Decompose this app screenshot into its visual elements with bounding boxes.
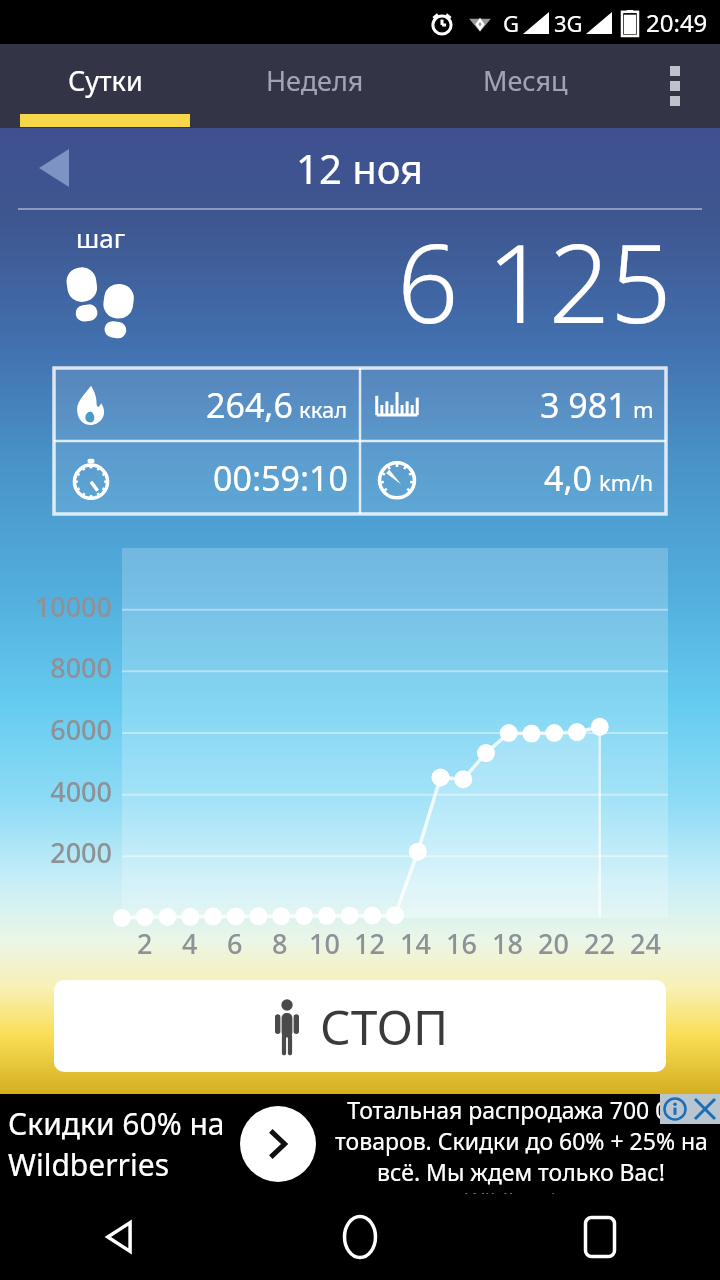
staticText: 264,6 xyxy=(206,382,293,428)
staticText: 4,0 xyxy=(544,455,593,501)
button[interactable]: Previous day xyxy=(26,140,82,196)
staticText: 4000 xyxy=(50,773,112,810)
staticText: СТОП xyxy=(320,994,449,1059)
staticText: 00:59:10 xyxy=(213,455,348,501)
staticText: Неделя xyxy=(266,62,364,99)
staticText: 2000 xyxy=(50,834,112,871)
staticText: 6000 xyxy=(50,711,112,748)
button[interactable]: 3 981 xyxy=(360,368,666,441)
button[interactable]: Recent apps xyxy=(480,1194,720,1280)
staticText: m xyxy=(633,394,654,424)
staticText: шаг xyxy=(76,220,126,255)
staticText: 10000 xyxy=(34,588,112,625)
staticText: ккал xyxy=(299,394,348,424)
staticText: 6 125 xyxy=(397,208,672,348)
staticText: km/h xyxy=(599,467,654,497)
staticText: 16 xyxy=(446,925,477,962)
staticText: 4 xyxy=(182,925,198,962)
button[interactable]: Ad info xyxy=(660,1094,690,1124)
staticText: G xyxy=(503,8,520,38)
button[interactable]: More options xyxy=(630,44,720,128)
staticText: 3 981 xyxy=(540,382,627,428)
staticText: Скидки 60% на xyxy=(8,1103,225,1144)
staticText: 8000 xyxy=(50,649,112,686)
staticText: 8 xyxy=(272,925,288,962)
staticText: Wildberries xyxy=(465,1187,578,1194)
staticText: 20:49 xyxy=(646,6,708,39)
button[interactable]: Скидки 60% на xyxy=(0,1094,720,1194)
staticText: Сутки xyxy=(68,62,143,99)
staticText: 10 xyxy=(309,925,340,962)
staticText: 3G xyxy=(554,8,583,38)
staticText: 20 xyxy=(538,925,569,962)
staticText: 12 xyxy=(354,925,385,962)
staticText: 24 xyxy=(630,925,661,962)
staticText: 14 xyxy=(400,925,431,962)
other: Open ad xyxy=(240,1106,316,1182)
button[interactable]: 00:59:10 xyxy=(54,441,360,514)
staticText: 22 xyxy=(584,925,615,962)
button[interactable]: Close ad xyxy=(690,1094,720,1124)
button[interactable]: СТОП xyxy=(54,980,666,1072)
staticText: 2 xyxy=(137,925,153,962)
staticText: Тотальная распродажа 700 000 xyxy=(347,1094,695,1125)
staticText: всё. Мы ждем только Вас! xyxy=(377,1156,665,1187)
staticText: Wildberries xyxy=(8,1144,170,1185)
staticText: Месяц xyxy=(483,62,568,99)
staticText: 6 xyxy=(227,925,243,962)
button[interactable]: Сутки xyxy=(0,44,210,128)
button[interactable]: Home xyxy=(240,1194,480,1280)
button[interactable]: 4,0 xyxy=(360,441,666,514)
staticText: 12 ноя xyxy=(296,141,424,195)
button[interactable]: 264,6 xyxy=(54,368,360,441)
button[interactable]: Back xyxy=(0,1194,240,1280)
staticText: товаров. Скидки до 60% + 25% на xyxy=(335,1125,708,1156)
button[interactable]: Неделя xyxy=(210,44,420,128)
staticText: 18 xyxy=(492,925,523,962)
button[interactable]: Месяц xyxy=(420,44,630,128)
